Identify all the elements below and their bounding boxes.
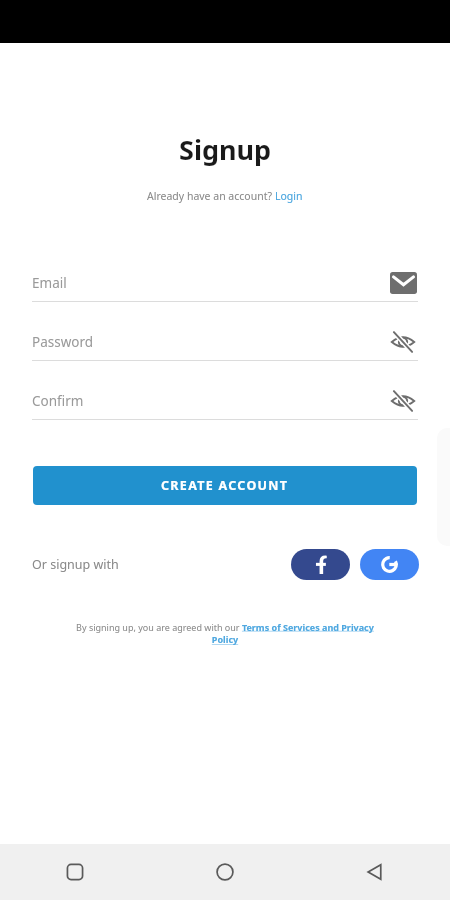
- button[interactable]: By signing up, you are agreed with our T…: [70, 621, 380, 646]
- button[interactable]: Sign up with Facebook: [291, 549, 350, 580]
- staticText: Email: [32, 274, 67, 292]
- button[interactable]: Password: [32, 324, 418, 361]
- staticText: Password: [32, 333, 94, 351]
- button[interactable]: Confirm: [32, 383, 418, 420]
- button[interactable]: Email: [388, 268, 418, 298]
- button[interactable]: Toggle password visibility: [388, 327, 418, 357]
- button[interactable]: CREATE ACCOUNT: [33, 466, 417, 505]
- staticText: Login: [275, 189, 303, 203]
- button[interactable]: Toggle password visibility: [388, 386, 418, 416]
- button[interactable]: Sign up with Google: [360, 549, 419, 580]
- button[interactable]: Login: [275, 189, 303, 203]
- staticText: Already have an account?: [147, 189, 275, 203]
- staticText: By signing up, you are agreed with our T…: [70, 621, 380, 646]
- staticText: CREATE ACCOUNT: [161, 477, 289, 494]
- staticText: Signup: [179, 131, 272, 168]
- button[interactable]: Home: [150, 844, 300, 900]
- staticText: Or signup with: [32, 556, 119, 573]
- staticText: Confirm: [32, 392, 84, 410]
- button[interactable]: Recent apps: [0, 844, 150, 900]
- button[interactable]: Back: [300, 844, 450, 900]
- button[interactable]: Email: [32, 265, 418, 302]
